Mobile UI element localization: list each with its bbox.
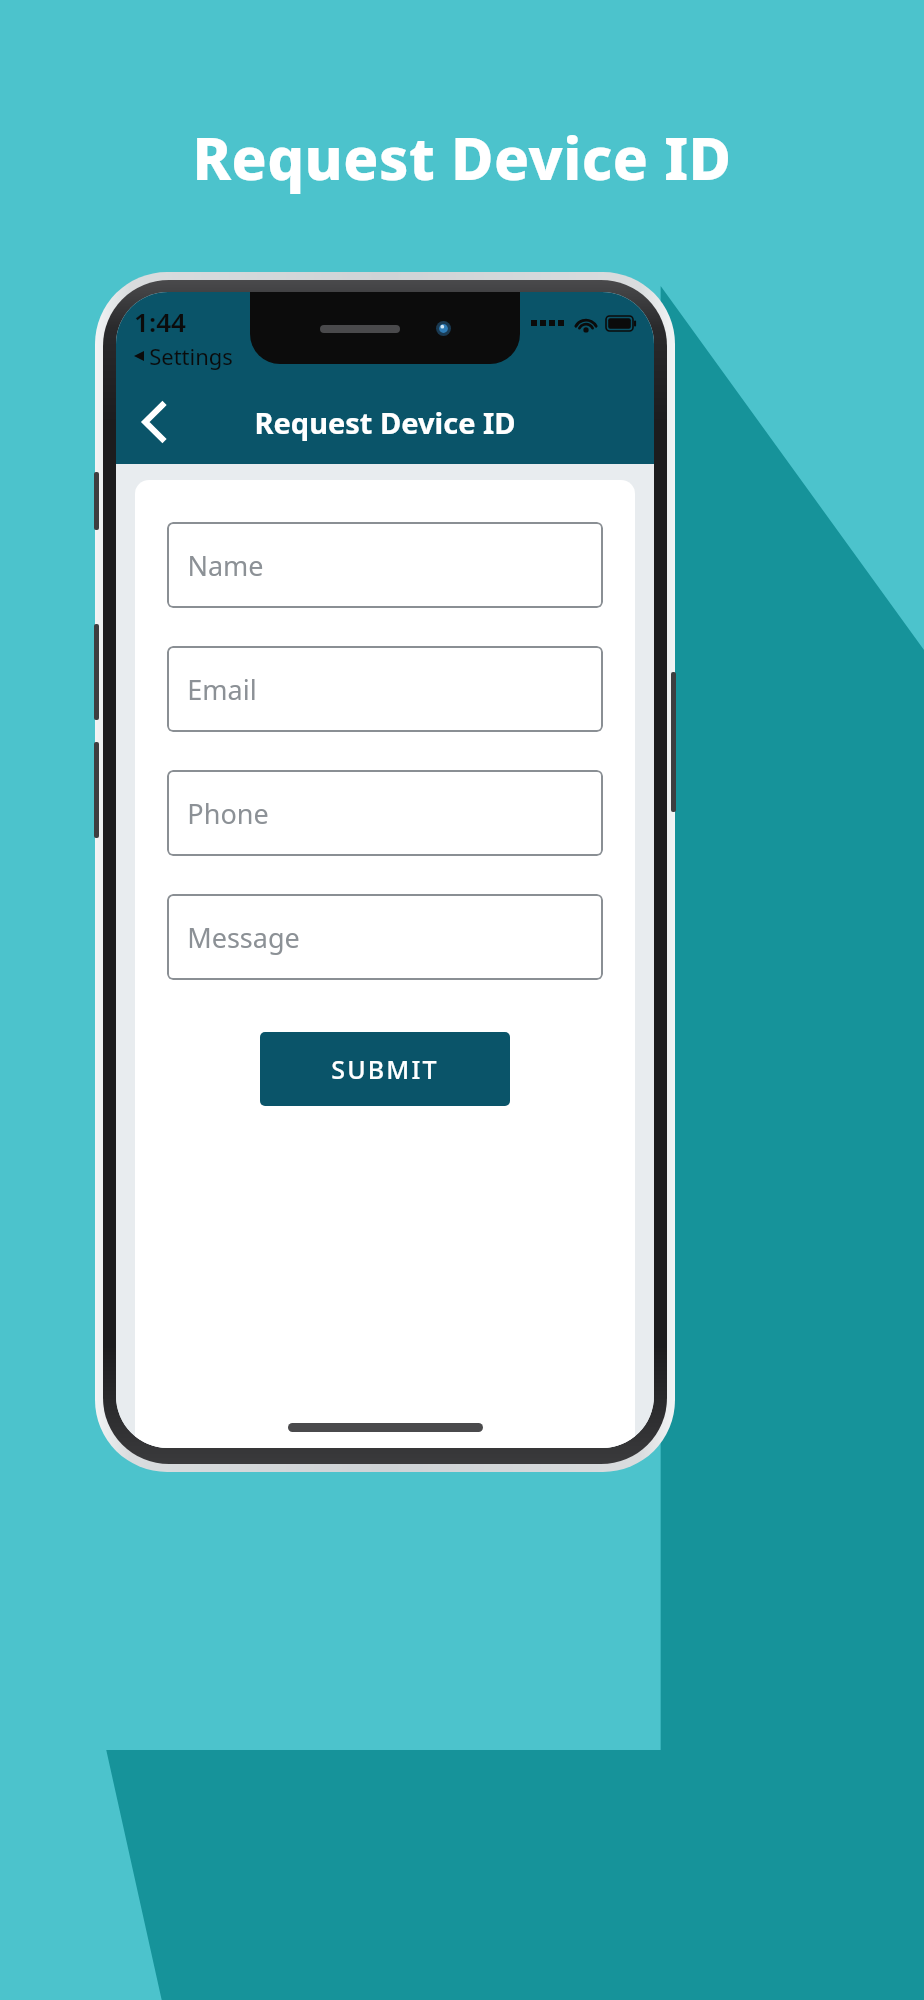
staticText: Message [187, 919, 300, 956]
staticText: 1:44 [134, 304, 186, 339]
button[interactable]: Phone [167, 770, 603, 856]
staticText: Request Device ID [192, 118, 732, 197]
button[interactable]: SUBMIT [260, 1032, 510, 1106]
button[interactable]: Back [126, 394, 182, 450]
staticText: SUBMIT [331, 1052, 439, 1086]
staticText: Phone [187, 795, 269, 832]
staticText: Name [187, 547, 264, 584]
staticText: Request Device ID [254, 403, 516, 442]
staticText: Settings [149, 341, 233, 371]
staticText: Email [187, 671, 257, 708]
button[interactable]: Email [167, 646, 603, 732]
button[interactable]: Name [167, 522, 603, 608]
button[interactable]: Message [167, 894, 603, 980]
